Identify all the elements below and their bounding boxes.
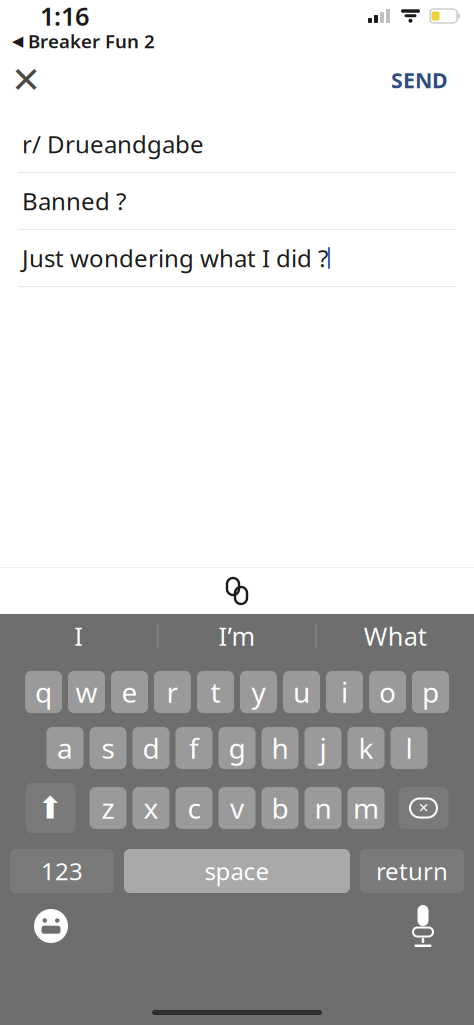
button[interactable]: I	[0, 614, 157, 658]
staticText: ◀	[12, 33, 23, 49]
staticText: return	[376, 855, 448, 887]
button[interactable]: Close	[2, 56, 50, 104]
button[interactable]: s	[89, 727, 126, 769]
staticText: n	[314, 789, 331, 827]
staticText: a	[57, 729, 73, 767]
button[interactable]: m	[347, 787, 384, 829]
staticText: x	[143, 789, 158, 827]
button[interactable]: Shift	[25, 783, 75, 833]
staticText: Banned ?	[22, 185, 126, 217]
staticText: o	[379, 673, 396, 711]
button[interactable]: i	[326, 671, 363, 713]
button[interactable]: p	[412, 671, 449, 713]
staticText: u	[293, 673, 310, 711]
button[interactable]: f	[175, 727, 212, 769]
button[interactable]: What	[317, 614, 474, 658]
staticText: v	[230, 789, 244, 827]
staticText: s	[101, 729, 114, 767]
button[interactable]: u	[283, 671, 320, 713]
button[interactable]: c	[175, 787, 212, 829]
staticText: Breaker Fun 2	[28, 29, 155, 53]
button[interactable]: h	[261, 727, 298, 769]
staticText: q	[35, 673, 52, 711]
staticText: I	[74, 619, 83, 653]
staticText: p	[422, 673, 439, 711]
staticText: m	[353, 789, 379, 827]
staticText: d	[142, 729, 159, 767]
button[interactable]: Emoji keyboard	[28, 903, 74, 949]
staticText: k	[358, 729, 373, 767]
button[interactable]: I’m	[158, 614, 316, 658]
staticText: 1:16	[40, 0, 89, 33]
staticText: g	[228, 729, 245, 767]
button[interactable]: n	[304, 787, 341, 829]
button[interactable]: q	[25, 671, 62, 713]
staticText: e	[121, 673, 137, 711]
staticText: z	[101, 789, 114, 827]
button[interactable]: Insert link	[211, 570, 263, 612]
staticText: c	[187, 789, 200, 827]
button[interactable]: b	[261, 787, 298, 829]
button[interactable]: l	[390, 727, 427, 769]
button[interactable]: z	[89, 787, 126, 829]
staticText: ✕	[418, 800, 429, 815]
staticText: What	[364, 619, 427, 653]
staticText: l	[405, 729, 412, 767]
staticText: r/ Drueandgabe	[22, 128, 204, 160]
button[interactable]: k	[347, 727, 384, 769]
button[interactable]: t	[197, 671, 234, 713]
staticText: j	[319, 729, 326, 767]
staticText: f	[189, 729, 199, 767]
button[interactable]: d	[132, 727, 169, 769]
button[interactable]: x	[132, 787, 169, 829]
button[interactable]: return	[360, 849, 464, 893]
button[interactable]: r	[154, 671, 191, 713]
staticText: ✕	[11, 60, 41, 100]
button[interactable]: space	[124, 849, 350, 893]
button[interactable]: SEND	[377, 56, 462, 104]
button[interactable]: g	[218, 727, 255, 769]
staticText: ⬆	[37, 791, 63, 825]
staticText: w	[75, 673, 97, 711]
button[interactable]: j	[304, 727, 341, 769]
button[interactable]: e	[111, 671, 148, 713]
staticText: i	[341, 673, 348, 711]
staticText: 123	[41, 855, 83, 887]
button[interactable]: Dictation	[400, 903, 446, 949]
staticText: Just wondering what I did ?	[22, 242, 328, 274]
button[interactable]: Delete	[398, 787, 448, 829]
button[interactable]: a	[46, 727, 83, 769]
staticText: space	[204, 855, 269, 887]
staticText: SEND	[391, 66, 448, 94]
staticText: r	[166, 673, 178, 711]
staticText: b	[271, 789, 288, 827]
staticText: y	[251, 673, 265, 711]
button[interactable]: v	[218, 787, 255, 829]
button[interactable]: o	[369, 671, 406, 713]
button[interactable]: y	[240, 671, 277, 713]
button[interactable]: 123	[10, 849, 114, 893]
staticText: t	[210, 673, 220, 711]
staticText: I’m	[218, 619, 255, 653]
button[interactable]: w	[68, 671, 105, 713]
staticText: h	[271, 729, 288, 767]
